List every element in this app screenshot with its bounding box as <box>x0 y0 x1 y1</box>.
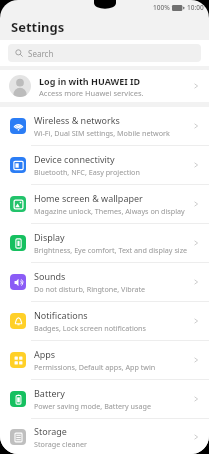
staticText: Log in with HUAWEI ID <box>39 75 141 87</box>
button[interactable]: Battery <box>0 380 209 418</box>
staticText: Settings <box>11 18 65 36</box>
button[interactable]: Log in with HUAWEI ID <box>0 70 209 102</box>
staticText: Display <box>34 231 65 243</box>
button[interactable]: Storage <box>0 419 209 454</box>
button[interactable]: Sounds <box>0 263 209 301</box>
staticText: Power saving mode, Battery usage <box>34 401 151 411</box>
button[interactable]: Display <box>0 224 209 262</box>
staticText: Wireless & networks <box>34 114 120 126</box>
button[interactable]: Notifications <box>0 302 209 340</box>
staticText: Device connectivity <box>34 153 115 165</box>
button[interactable]: Device connectivity <box>0 146 209 184</box>
staticText: Badges, Lock screen notifications <box>34 323 146 333</box>
button[interactable]: Search <box>8 44 201 62</box>
staticText: Storage cleaner <box>34 439 87 449</box>
staticText: Bluetooth, NFC, Easy projection <box>34 167 140 177</box>
staticText: 100% <box>153 3 170 12</box>
staticText: Brightness, Eye comfort, Text and displa… <box>34 245 188 255</box>
staticText: Notifications <box>34 309 88 321</box>
staticText: Search <box>28 48 54 59</box>
staticText: Wi-Fi, Dual SIM settings, Mobile network <box>34 128 170 138</box>
staticText: Apps <box>34 348 56 360</box>
staticText: Do not disturb, Ringtone, Vibrate <box>34 284 146 294</box>
button[interactable]: Home screen & wallpaper <box>0 185 209 223</box>
staticText: Battery <box>34 387 65 399</box>
staticText: Storage <box>34 425 67 437</box>
staticText: 10:00 <box>187 3 204 12</box>
staticText: Access more Huawei services. <box>39 88 144 98</box>
staticText: Permissions, Default apps, App twin <box>34 362 156 372</box>
staticText: Home screen & wallpaper <box>34 192 143 204</box>
staticText: Sounds <box>34 270 66 282</box>
staticText: Magazine unlock, Themes, Always on displ… <box>34 206 185 216</box>
button[interactable]: Wireless & networks <box>0 107 209 145</box>
button[interactable]: Apps <box>0 341 209 379</box>
